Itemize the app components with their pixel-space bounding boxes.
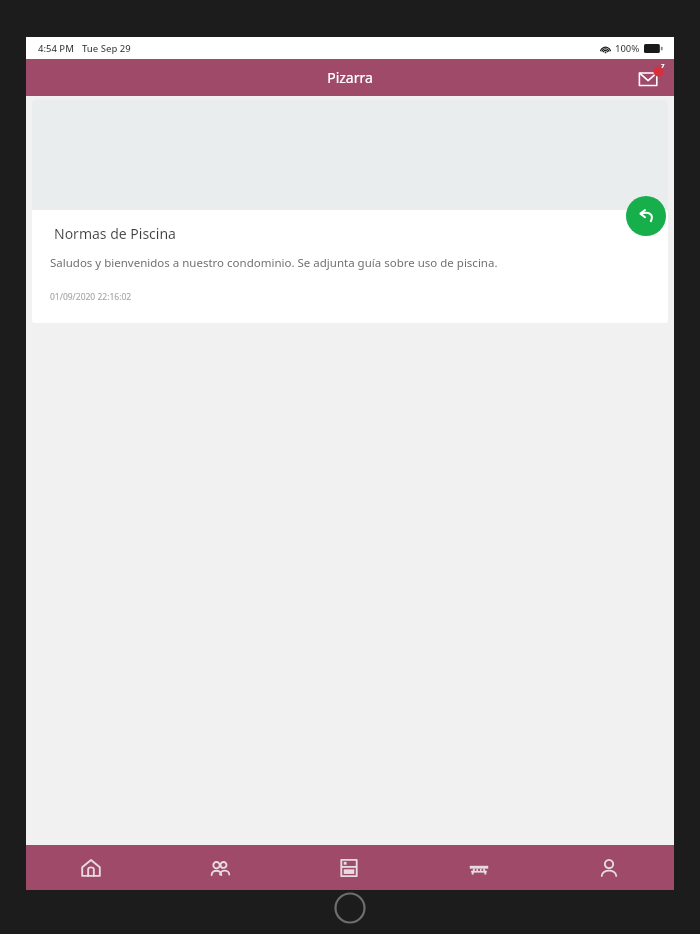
button[interactable]: Home [334,892,366,924]
staticText: 01/09/2020 22:16:02 [50,291,132,303]
button[interactable]: Messages [634,63,664,93]
staticText: Pizarra [327,68,373,87]
staticText: Saludos y bienvenidos a nuestro condomin… [50,255,498,271]
button[interactable]: Amenities [414,845,544,890]
button[interactable]: People [155,845,284,890]
button[interactable]: Profile [544,845,674,890]
staticText: Tue Sep 29 [82,42,131,55]
button[interactable]: Reply [626,196,666,236]
staticText: 7 [661,62,665,70]
staticText: 100% [615,42,640,55]
button[interactable]: Bookings [284,845,414,890]
button[interactable]: Home [26,845,155,890]
button[interactable]: Normas de Piscina [32,100,668,323]
staticText: Normas de Piscina [54,224,176,243]
staticText: 4:54 PM [38,42,74,55]
